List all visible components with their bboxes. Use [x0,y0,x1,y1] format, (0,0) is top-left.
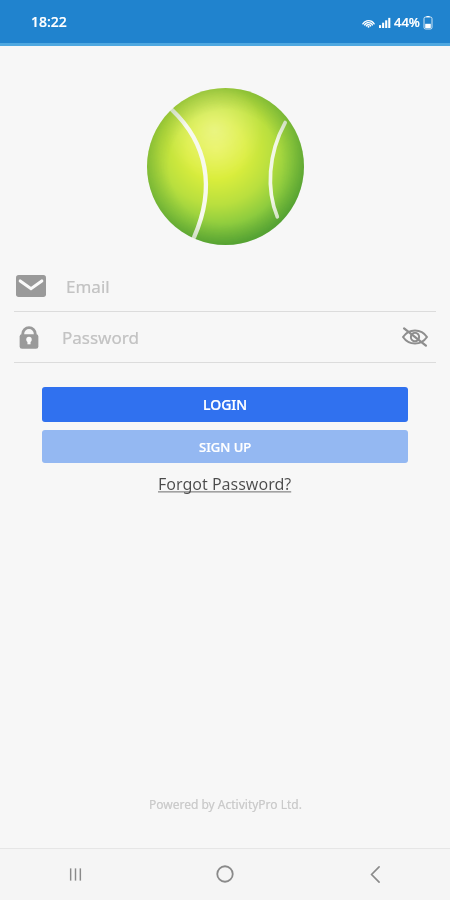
button[interactable]: Home [150,848,300,900]
staticText: LOGIN [203,395,248,414]
staticText: Email [66,275,432,298]
button[interactable]: Back [300,848,450,900]
staticText: Powered by ActivityPro Ltd. [149,796,302,812]
button[interactable]: Password [0,312,450,362]
button[interactable]: Forgot Password? [152,471,298,497]
staticText: 18:22 [31,12,67,31]
staticText: Password [62,326,398,349]
button[interactable]: SIGN UP [42,430,408,463]
button[interactable]: LOGIN [42,387,408,422]
staticText: Forgot Password? [158,473,292,495]
other: Email [16,275,46,297]
button[interactable]: Recent apps [0,848,150,900]
other: Password [16,323,42,351]
staticText: SIGN UP [199,438,252,456]
staticText: 44% [394,13,420,31]
button[interactable]: Toggle password visibility [398,320,432,354]
button[interactable]: Email [0,261,450,311]
